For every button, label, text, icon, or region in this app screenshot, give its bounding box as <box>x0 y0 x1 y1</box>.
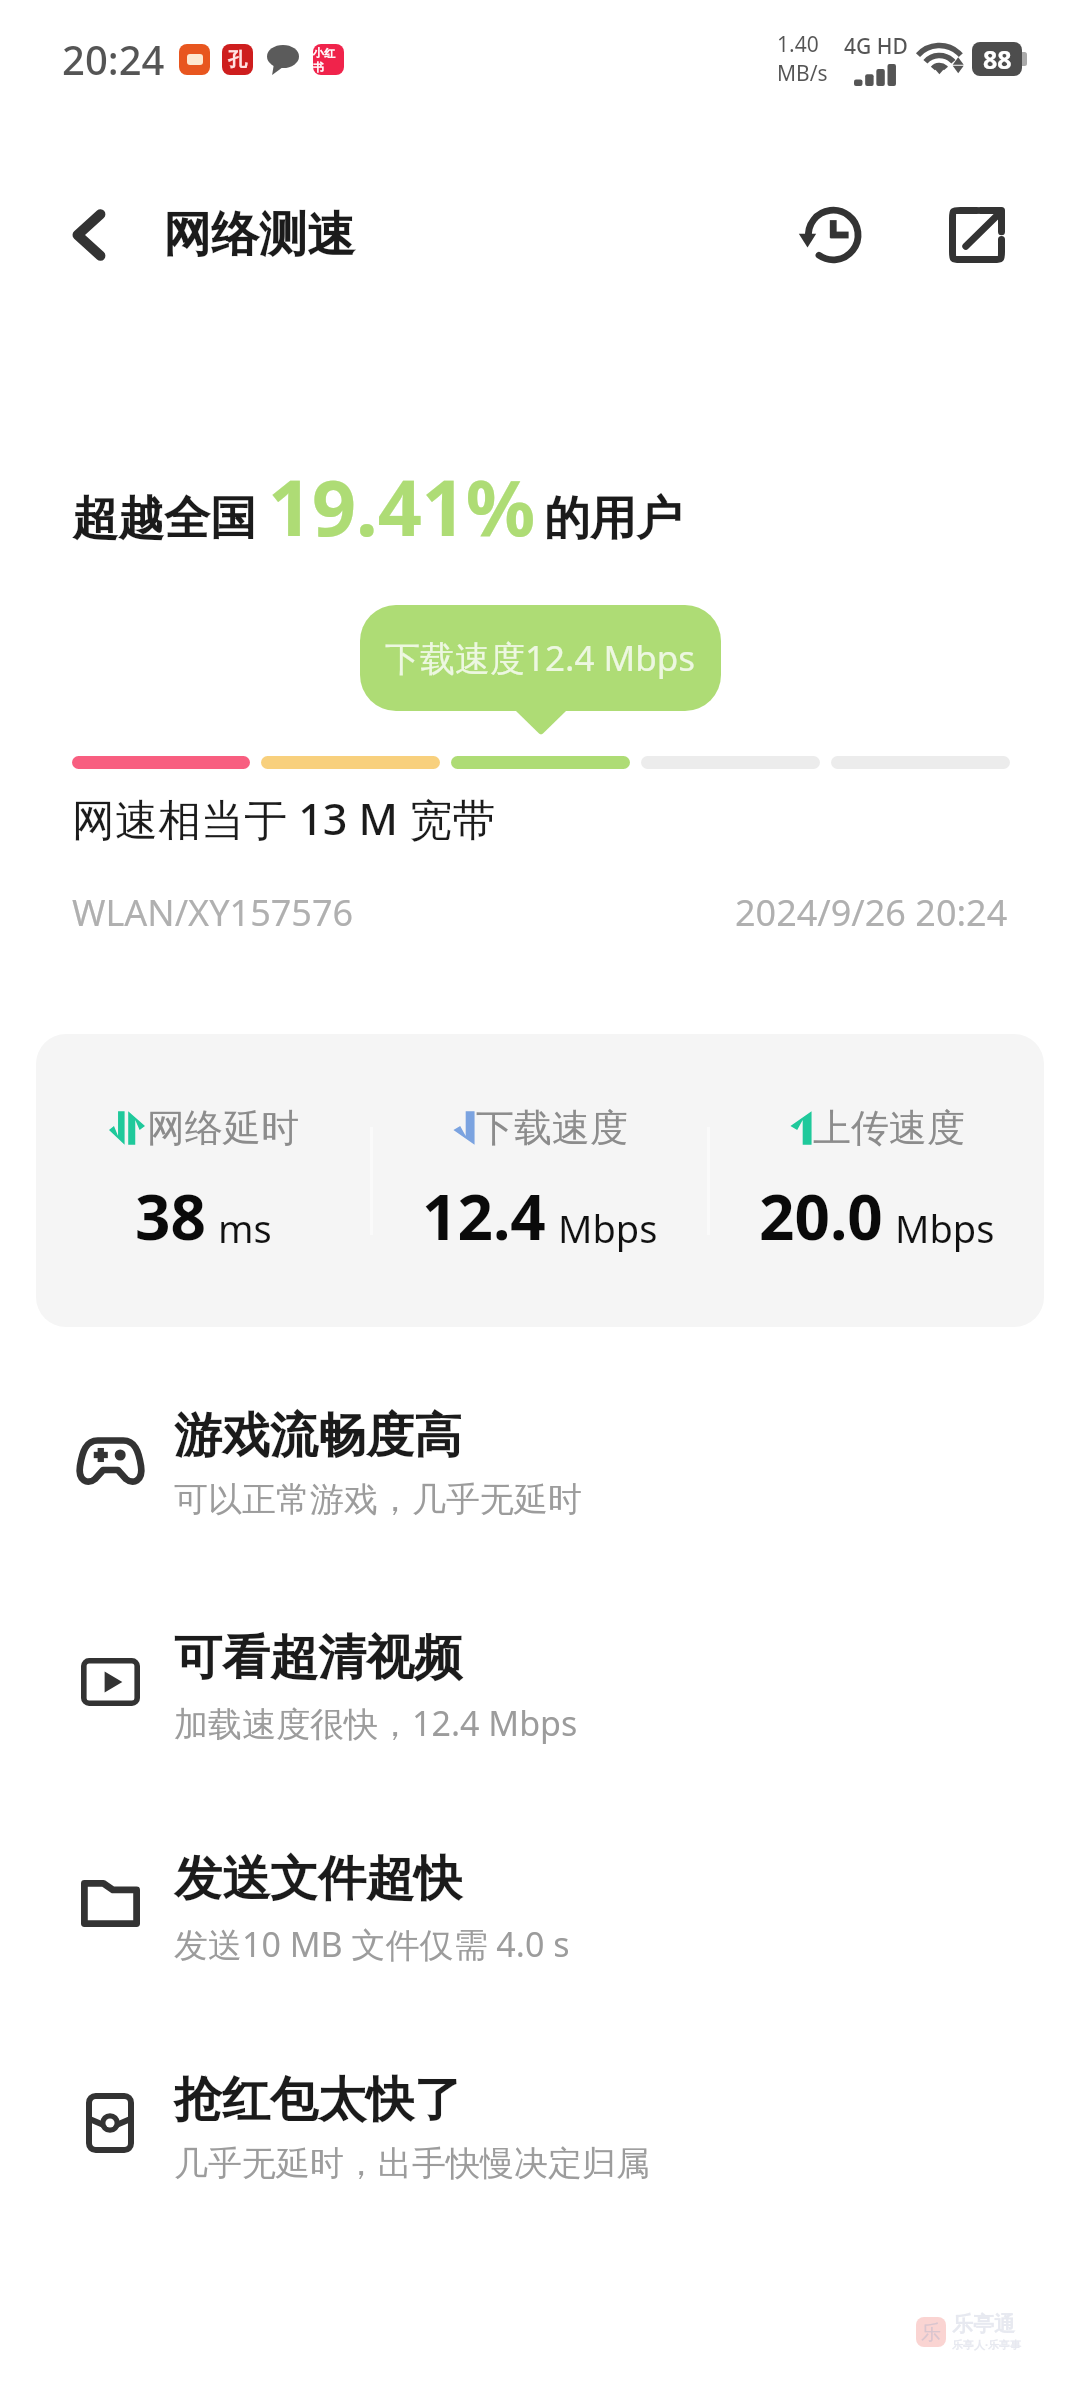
button[interactable]: Back <box>52 197 128 273</box>
staticText: 20.0 <box>759 1174 883 1258</box>
staticText: 加载速度很快，12.4 Mbps <box>174 1700 578 1746</box>
staticText: 网络测速 <box>163 205 355 265</box>
staticText: 孔 <box>228 48 247 72</box>
staticText: 发送文件超快 <box>174 1849 462 1909</box>
button[interactable]: 上传速度 <box>710 1104 1044 1258</box>
staticText: 可以正常游戏，几乎无延时 <box>174 1478 582 1521</box>
staticText: 上传速度 <box>813 1104 965 1152</box>
staticText: 可看超清视频 <box>174 1628 462 1688</box>
staticText: WLAN/XY157576 <box>72 888 354 937</box>
staticText: 网络延时 <box>147 1104 299 1152</box>
staticText: Mbps <box>895 1202 995 1254</box>
staticText: 19.41% <box>268 454 536 559</box>
staticText: 乐 <box>921 2320 941 2345</box>
button[interactable]: 可看超清视频 <box>0 1628 1080 1746</box>
button[interactable]: 下载速度 <box>373 1104 707 1258</box>
staticText: 20:24 <box>62 32 165 86</box>
staticText: 下载速度12.4 Mbps <box>385 634 696 682</box>
staticText: 几乎无延时，出手快慢决定归属 <box>174 2142 650 2185</box>
staticText: MB/s <box>777 59 828 88</box>
staticText: Mbps <box>558 1202 658 1254</box>
staticText: 超越全国 <box>72 490 256 548</box>
staticText: 游戏流畅度高 <box>174 1406 462 1466</box>
staticText: 抢红包太快了 <box>174 2070 462 2130</box>
staticText: 网速相当于 13 M 宽带 <box>72 789 496 848</box>
staticText: 88 <box>983 42 1012 76</box>
staticText: 下载速度 <box>476 1104 628 1152</box>
button[interactable]: 抢红包太快了 <box>0 2070 1080 2185</box>
staticText: 4G HD <box>844 32 908 61</box>
staticText: 2024/9/26 20:24 <box>735 888 1008 937</box>
staticText: 12.4 <box>422 1174 546 1258</box>
button[interactable]: 游戏流畅度高 <box>0 1406 1080 1521</box>
staticText: 1.40 <box>777 30 819 59</box>
staticText: ms <box>218 1202 272 1254</box>
staticText: 的用户 <box>544 490 682 548</box>
button[interactable]: 网络延时 <box>36 1104 370 1258</box>
staticText: 38 <box>135 1174 206 1258</box>
button[interactable]: 发送文件超快 <box>0 1849 1080 1967</box>
staticText: 乐亭人·乐亭事 <box>952 2337 1022 2352</box>
staticText: 小红书 <box>313 46 344 74</box>
staticText: 乐亭通 <box>952 2311 1015 2337</box>
button[interactable]: Share <box>935 193 1019 277</box>
staticText: 发送10 MB 文件仅需 4.0 s <box>174 1921 570 1967</box>
button[interactable]: History <box>790 193 874 277</box>
